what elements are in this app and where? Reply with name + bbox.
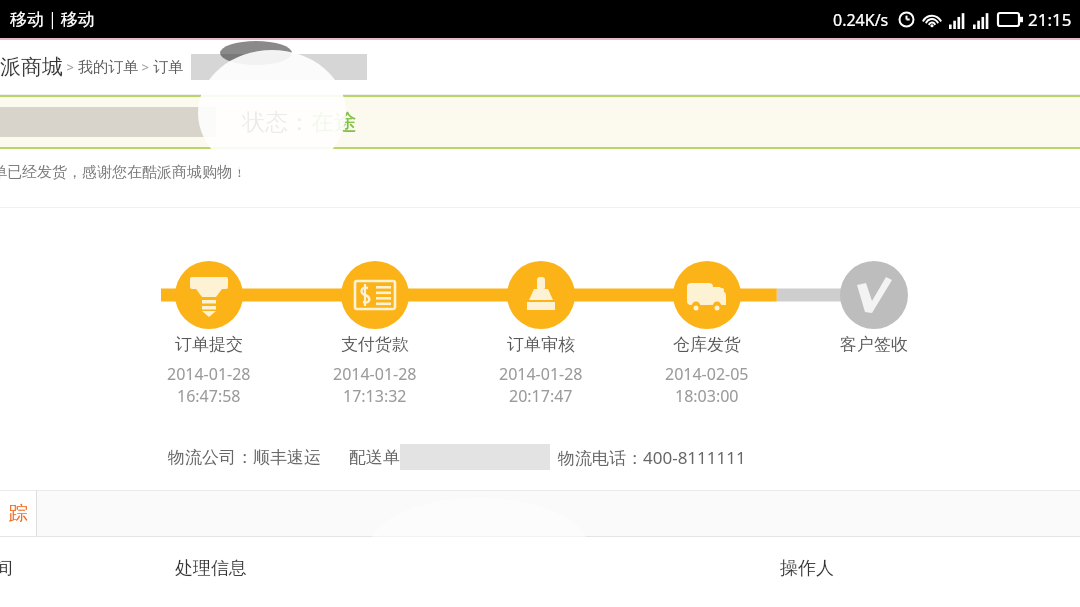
- staticText: 物流公司：顺丰速运: [168, 447, 321, 468]
- staticText: 操作人: [780, 557, 834, 580]
- staticText: 2014-01-28: [167, 363, 251, 385]
- staticText: 16:47:58: [177, 385, 241, 407]
- button[interactable]: 派商城: [0, 54, 63, 80]
- staticText: 2014-02-05: [665, 363, 749, 385]
- staticText: 18:03:00: [675, 385, 739, 407]
- staticText: 订单提交: [175, 334, 243, 355]
- button[interactable]: 订单审核: [461, 334, 621, 407]
- staticText: 物流电话：400-8111111: [558, 446, 746, 469]
- button[interactable]: 客户签收: [794, 334, 954, 355]
- button[interactable]: 仓库发货: [627, 334, 787, 407]
- staticText: 移动｜移动: [10, 9, 95, 30]
- button[interactable]: 踪: [0, 491, 36, 537]
- staticText: 配送单: [349, 447, 400, 468]
- staticText: >: [138, 58, 153, 76]
- staticText: 订单: [153, 58, 183, 77]
- staticText: 21:15: [1028, 8, 1072, 31]
- staticText: 2014-01-28: [333, 363, 417, 385]
- staticText: 订单审核: [507, 334, 575, 355]
- staticText: 踪: [9, 502, 28, 526]
- staticText: 0.24K/s: [833, 9, 889, 31]
- staticText: 仓库发货: [673, 334, 741, 355]
- staticText: 客户签收: [840, 334, 908, 355]
- staticText: 状态：: [242, 108, 311, 137]
- staticText: 17:13:32: [343, 385, 407, 407]
- staticText: >: [63, 58, 78, 76]
- button[interactable]: 我的订单: [78, 58, 138, 77]
- staticText: 2014-01-28: [499, 363, 583, 385]
- staticText: 间: [0, 557, 13, 580]
- staticText: 支付货款: [341, 334, 409, 355]
- staticText: 处理信息: [175, 557, 247, 580]
- staticText: 在途: [311, 108, 357, 137]
- button[interactable]: 支付货款: [295, 334, 455, 407]
- staticText: 20:17:47: [509, 385, 573, 407]
- staticText: 单已经发货，感谢您在酷派商城购物！: [0, 163, 247, 182]
- button[interactable]: 订单提交: [129, 334, 289, 407]
